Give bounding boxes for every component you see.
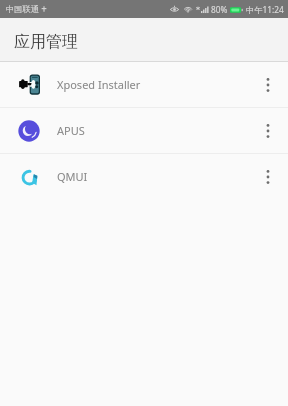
staticText: 中午11:24 [246,4,284,15]
button[interactable]: APUS [0,108,288,153]
staticText: 中国联通 [6,4,40,14]
staticText: QMUI [57,169,88,184]
button[interactable]: More options [253,154,283,199]
button[interactable]: More options [253,62,283,107]
staticText: APUS [57,123,85,138]
button[interactable]: QMUI [0,154,288,199]
staticText: 应用管理 [14,32,78,52]
button[interactable]: Xposed Installer [0,62,288,107]
staticText: 80% [211,4,228,15]
button[interactable]: More options [253,108,283,153]
staticText: Xposed Installer [57,77,141,92]
